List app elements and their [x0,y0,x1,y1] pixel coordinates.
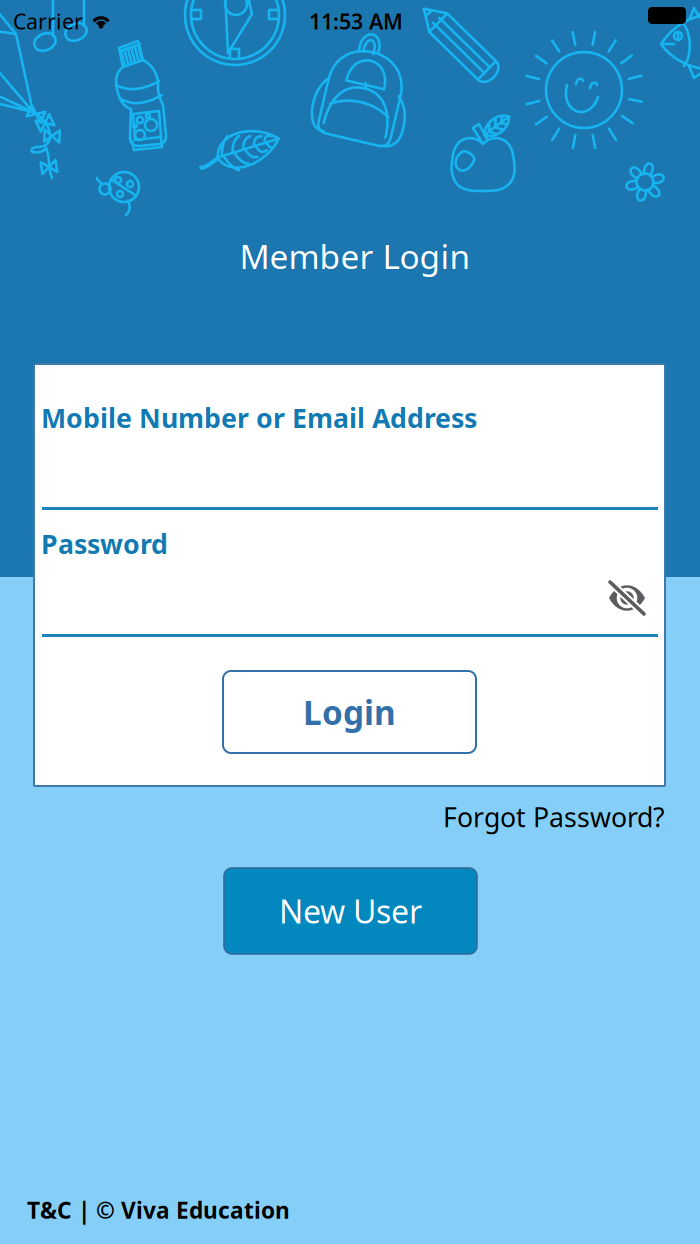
button[interactable]: Login [223,671,476,753]
button[interactable]: Show password [596,572,658,624]
button[interactable]: Forgot Password? [425,800,665,834]
staticText: Password [41,526,168,561]
staticText: Login [303,690,396,734]
staticText: 11:53 AM [309,7,403,35]
staticText: Mobile Number or Email Address [41,400,477,435]
staticText: T&C | © Viva Education [27,1195,290,1225]
staticText: Member Login [239,234,470,278]
staticText: Forgot Password? [443,799,665,835]
button[interactable]: New User [224,868,477,954]
staticText: Carrier [13,7,83,35]
staticText: New User [279,890,422,932]
